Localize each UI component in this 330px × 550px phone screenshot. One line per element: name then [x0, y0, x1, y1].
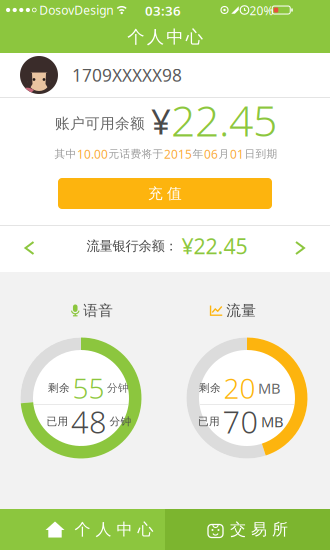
staticText: 充 值 [148, 184, 182, 202]
staticText: 年 [192, 147, 203, 160]
staticText: 06 [204, 146, 218, 162]
staticText: 已用 [46, 415, 68, 428]
staticText: 55 [72, 369, 104, 407]
staticText: MB [261, 412, 284, 431]
staticText: ¥22.45 [181, 232, 247, 260]
button[interactable]: 1709XXXXX98 [0, 53, 330, 97]
staticText: 个 人 中 心 [74, 520, 153, 539]
staticText: 账户可用余额 [55, 114, 145, 132]
staticText: 48 [71, 401, 107, 442]
staticText: 01 [230, 146, 244, 162]
button[interactable]: 个 人 中 心 [0, 509, 165, 550]
staticText: 交 易 所 [230, 520, 288, 539]
staticText: 其中 [54, 147, 76, 160]
staticText: 20 [223, 369, 255, 407]
button[interactable]: 交 易 所 [165, 509, 330, 550]
button[interactable]: 充 值 [58, 178, 272, 209]
staticText: 元话费将于 [108, 147, 163, 160]
staticText: 03:36 [145, 2, 181, 19]
staticText: 1709XXXXX98 [72, 63, 182, 86]
staticText: DosovDesign [39, 2, 113, 18]
staticText: 个人中心 [127, 26, 203, 48]
staticText: ¥ [151, 98, 171, 144]
staticText: 流量银行余额： [86, 238, 177, 254]
button[interactable]: 流量银行余额： [0, 226, 330, 272]
staticText: 语音 [83, 301, 113, 319]
staticText: 20% [249, 2, 273, 18]
staticText: 剩余 [48, 381, 70, 394]
staticText: 10.00 [77, 146, 108, 162]
staticText: 70 [222, 401, 258, 442]
staticText: MB [258, 378, 281, 398]
staticText: 2015 [164, 146, 192, 162]
staticText: 剩余 [199, 381, 221, 394]
staticText: 分钟 [109, 415, 131, 428]
staticText: 日到期 [244, 147, 277, 160]
staticText: 月 [218, 147, 229, 160]
staticText: 22.45 [171, 92, 277, 148]
staticText: 流量 [226, 301, 256, 319]
staticText: 分钟 [107, 381, 129, 394]
staticText: 已用 [198, 415, 220, 428]
